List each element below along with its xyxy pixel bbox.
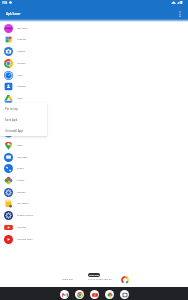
button[interactable]: Toast text	[88, 273, 100, 277]
staticText: YouTube Music	[17, 238, 33, 241]
button[interactable]: System Tracing	[0, 209, 188, 221]
button[interactable]: Calendar	[0, 33, 188, 45]
staticText: Clock	[17, 74, 23, 77]
button[interactable]: App icon	[122, 277, 128, 283]
staticText: Drive	[17, 97, 23, 100]
button[interactable]: Contacts	[0, 80, 188, 92]
staticText: 7:05	[2, 1, 8, 5]
staticText: Maps	[17, 144, 23, 147]
staticText: SIM Toolkit	[17, 202, 29, 205]
staticText: Calendar	[17, 38, 27, 41]
staticText: Chrome	[17, 62, 26, 65]
staticText: Camera	[17, 50, 26, 53]
staticText: Settings	[17, 191, 26, 194]
staticText: Phone	[17, 167, 24, 170]
staticText: Messages	[17, 156, 28, 159]
staticText: Contacts	[17, 85, 27, 88]
staticText: Apk Saver	[17, 27, 28, 30]
button[interactable]: Gmail	[0, 115, 188, 127]
staticText: Files	[17, 109, 22, 112]
button[interactable]: Maps	[0, 139, 188, 151]
staticText: Show text	[62, 277, 73, 280]
staticText: Pin to top	[5, 107, 19, 111]
staticText: Google	[17, 132, 25, 135]
button[interactable]: Photos	[0, 174, 188, 186]
button[interactable]: Save Apk	[0, 114, 47, 125]
staticText: Apk Saver	[6, 12, 21, 16]
button[interactable]: youtube	[90, 290, 99, 299]
button[interactable]: Files	[0, 104, 188, 116]
button[interactable]: YouTube Music	[0, 233, 188, 245]
button[interactable]: More options	[174, 9, 186, 19]
staticText: Photos	[17, 179, 25, 182]
button[interactable]: gmail	[60, 290, 69, 299]
staticText: Save Apk	[5, 118, 18, 122]
button[interactable]: photos	[105, 290, 114, 299]
button[interactable]: Camera	[0, 45, 188, 57]
button[interactable]: Pin to top	[0, 103, 47, 114]
button[interactable]: Chrome	[0, 57, 188, 69]
staticText: System Tracing	[17, 214, 33, 217]
staticText: YouTube	[17, 226, 27, 229]
button[interactable]: SIM Toolkit	[0, 197, 188, 209]
button[interactable]: YouTube	[0, 221, 188, 233]
button[interactable]: Drive	[0, 92, 188, 104]
button[interactable]: Google	[0, 127, 188, 139]
staticText: Uninstall App	[5, 129, 24, 133]
button[interactable]: Uninstall App	[0, 125, 47, 136]
button[interactable]: Show text	[62, 277, 73, 280]
staticText: Toast text	[89, 274, 99, 277]
staticText: This is a toast text ed	[88, 277, 112, 280]
button[interactable]: Phone	[0, 162, 188, 174]
button[interactable]: chrome	[75, 290, 84, 299]
button[interactable]: Settings	[0, 186, 188, 198]
button[interactable]: Clock	[0, 69, 188, 81]
button[interactable]: Messages	[0, 151, 188, 163]
button[interactable]: files	[120, 290, 129, 299]
button[interactable]: Apk Saver	[0, 22, 188, 34]
